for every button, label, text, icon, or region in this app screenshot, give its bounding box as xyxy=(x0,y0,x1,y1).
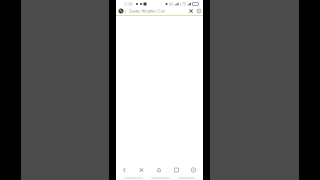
button[interactable]: Site information xyxy=(118,8,123,13)
button[interactable]: Stop loading xyxy=(189,9,193,13)
staticText: LTE xyxy=(180,1,186,7)
button[interactable]: Menu xyxy=(190,167,196,173)
button[interactable]: More options xyxy=(196,8,201,13)
button[interactable]: Back xyxy=(121,167,127,173)
staticText: ‹ xyxy=(124,7,126,15)
button[interactable]: Forward xyxy=(138,167,144,173)
staticText: 11:06 xyxy=(123,1,132,7)
button[interactable]: Home xyxy=(156,167,162,173)
staticText: Quetta Weather Con xyxy=(128,8,164,14)
button[interactable]: Tabs xyxy=(173,167,179,173)
staticText: 4G xyxy=(169,1,174,7)
